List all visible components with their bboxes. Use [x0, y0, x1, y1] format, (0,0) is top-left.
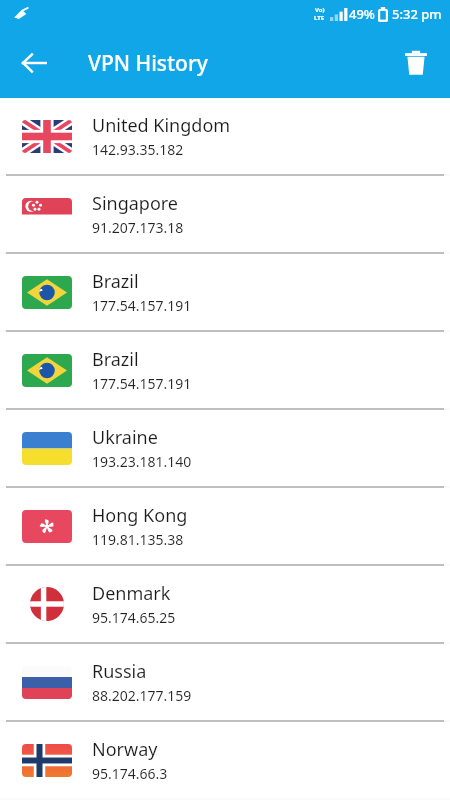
staticText: 5:32 pm [392, 5, 442, 23]
button[interactable]: Hong Kong [0, 488, 450, 564]
staticText: Ukraine [92, 425, 158, 450]
button[interactable]: Russia [0, 644, 450, 720]
staticText: 91.207.173.18 [92, 218, 184, 237]
staticText: LTE [314, 14, 325, 22]
staticText: 88.202.177.159 [92, 686, 192, 705]
staticText: 193.23.181.140 [92, 452, 192, 471]
staticText: Brazil [92, 347, 139, 372]
staticText: 119.81.135.38 [92, 530, 184, 549]
button[interactable]: Brazil [0, 332, 450, 408]
staticText: 142.93.35.182 [92, 140, 184, 159]
button[interactable]: Delete history [392, 39, 440, 87]
button[interactable]: Brazil [0, 254, 450, 330]
button[interactable]: United Kingdom [0, 98, 450, 174]
button[interactable]: Singapore [0, 176, 450, 252]
button[interactable]: Denmark [0, 566, 450, 642]
staticText: 177.54.157.191 [92, 296, 192, 315]
staticText: Singapore [92, 191, 179, 216]
staticText: Norway [92, 737, 158, 762]
staticText: Hong Kong [92, 503, 188, 528]
staticText: 177.54.157.191 [92, 374, 192, 393]
staticText: 95.174.65.25 [92, 608, 176, 627]
button[interactable]: Ukraine [0, 410, 450, 486]
staticText: Denmark [92, 581, 171, 606]
staticText: Brazil [92, 269, 139, 294]
staticText: Vo) [315, 6, 325, 14]
staticText: 49% [349, 5, 375, 23]
button[interactable]: Back [10, 39, 58, 87]
staticText: Russia [92, 659, 147, 684]
staticText: 95.174.66.3 [92, 764, 168, 783]
staticText: United Kingdom [92, 113, 231, 138]
staticText: VPN History [88, 49, 208, 78]
button[interactable]: Norway [0, 722, 450, 798]
